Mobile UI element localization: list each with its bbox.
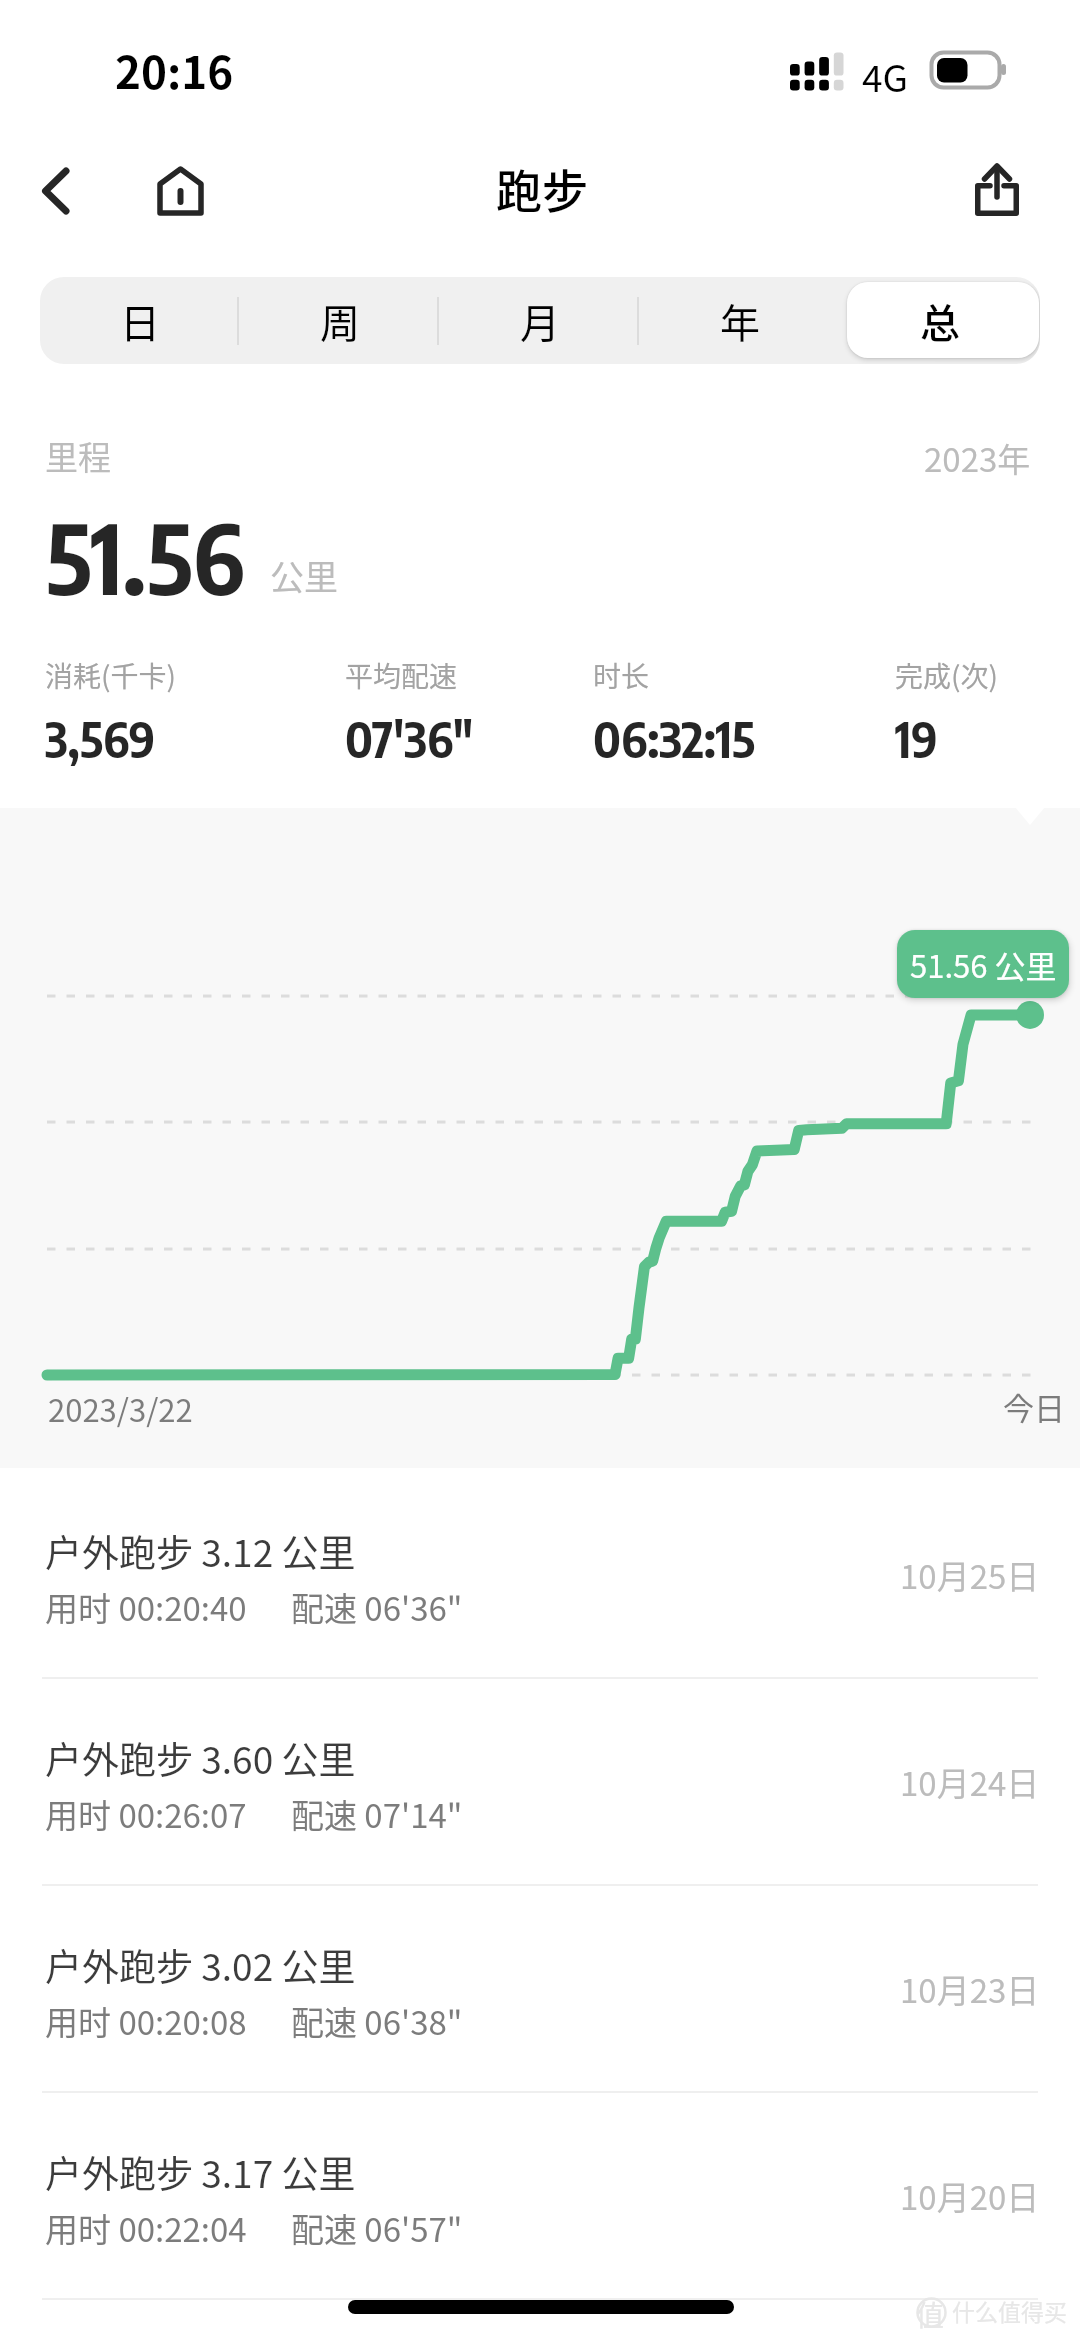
button[interactable]: Home (132, 146, 228, 236)
staticText: 完成(次) (895, 655, 998, 696)
staticText: 时长 (593, 655, 650, 696)
staticText: 户外跑步 3.12 公里 (45, 1524, 356, 1578)
staticText: 平均配速 (345, 655, 458, 696)
staticText: 户外跑步 3.02 公里 (45, 1938, 356, 1992)
staticText: 51.56 (46, 497, 245, 616)
staticText: 4G (862, 49, 909, 103)
staticText: 20:16 (115, 38, 234, 102)
staticText: 户外跑步 3.60 公里 (45, 1731, 356, 1785)
staticText: 用时 00:20:40 配速 06'36" (45, 1583, 463, 1631)
staticText: 2023/3/22 (48, 1386, 193, 1431)
staticText: 里程 (45, 432, 111, 480)
button[interactable]: 月 (440, 277, 640, 364)
button[interactable]: 年 (640, 277, 840, 364)
staticText: 3,569 (45, 709, 156, 769)
staticText: 什么值得买 (952, 2294, 1067, 2327)
button[interactable]: 户外跑步 3.12 公里 (0, 1471, 1080, 1678)
staticText: 今日 (1003, 1384, 1065, 1429)
staticText: 周 (320, 292, 360, 350)
staticText: 10月25日 (900, 1551, 1040, 1599)
button[interactable]: 周 (240, 277, 440, 364)
staticText: 值 (916, 2294, 945, 2335)
staticText: 07'36" (345, 709, 473, 769)
staticText: 用时 00:26:07 配速 07'14" (45, 1790, 463, 1838)
staticText: 公里 (270, 551, 338, 600)
staticText: 51.56 公里 (910, 942, 1057, 987)
staticText: 用时 00:22:04 配速 06'57" (45, 2204, 463, 2252)
staticText: 2023年 (924, 434, 1031, 482)
button[interactable]: 户外跑步 3.60 公里 (0, 1678, 1080, 1885)
button[interactable]: 户外跑步 3.17 公里 (0, 2092, 1080, 2299)
staticText: 跑步 (496, 155, 588, 222)
staticText: 10月23日 (900, 1965, 1040, 2013)
staticText: 年 (720, 292, 760, 350)
button[interactable]: 户外跑步 3.02 公里 (0, 1885, 1080, 2092)
staticText: 日 (120, 292, 160, 350)
staticText: 10月24日 (900, 1758, 1040, 1806)
button[interactable]: Back (18, 146, 102, 236)
staticText: 用时 00:20:08 配速 06'38" (45, 1997, 463, 2045)
button[interactable]: 日 (40, 277, 240, 364)
staticText: 总 (920, 292, 960, 350)
staticText: 户外跑步 3.17 公里 (45, 2145, 356, 2199)
staticText: 19 (895, 709, 938, 769)
button[interactable]: 总 (840, 277, 1040, 364)
staticText: 月 (520, 292, 560, 350)
button[interactable]: Share (952, 146, 1042, 236)
staticText: 06:32:15 (593, 709, 755, 769)
staticText: 10月20日 (900, 2172, 1040, 2220)
staticText: 消耗(千卡) (45, 655, 176, 696)
